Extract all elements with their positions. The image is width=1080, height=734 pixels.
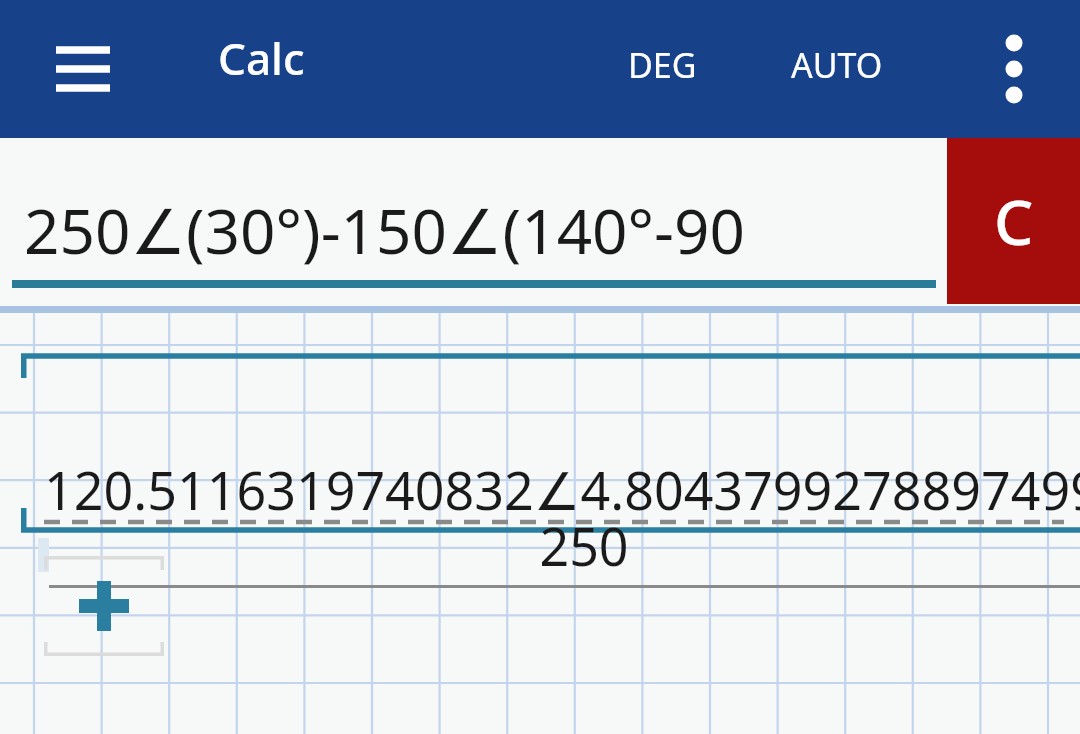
button[interactable]: Add expression [44,556,164,656]
button[interactable]: Calc [214,22,309,94]
staticText: Calc [218,28,305,88]
button[interactable]: More options [978,22,1050,116]
button[interactable]: C [947,138,1080,304]
staticText: 250∠(30°)-150∠(140°-90 [24,188,745,272]
button[interactable]: Open navigation menu [40,30,126,108]
button[interactable]: AUTO [781,34,893,96]
staticText: DEG [628,42,697,88]
button[interactable]: 250 [539,510,629,581]
staticText: C [994,179,1034,263]
staticText: AUTO [791,42,883,88]
staticText: 120.5116319740832∠4.8043799278897499 [44,454,1080,525]
button[interactable]: DEG [618,34,707,96]
staticText: 250 [539,510,629,581]
button[interactable]: 250∠(30°)-150∠(140°-90 [0,138,1080,306]
